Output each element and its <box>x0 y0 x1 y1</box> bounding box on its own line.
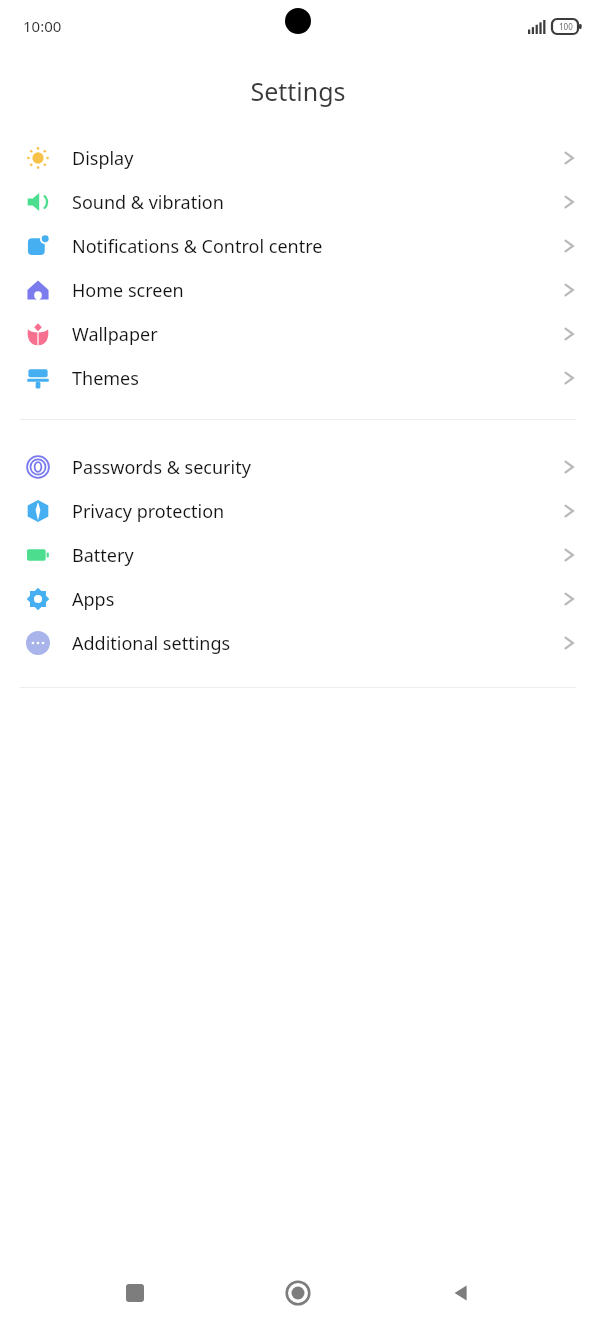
button[interactable]: Privacy protection <box>0 489 596 533</box>
staticText: Settings <box>0 74 596 108</box>
button[interactable]: Additional settings <box>0 621 596 665</box>
staticText: Privacy protection <box>72 499 562 524</box>
button[interactable]: Back <box>433 1265 489 1321</box>
staticText: Additional settings <box>72 631 562 656</box>
button[interactable]: Wallpaper <box>0 312 596 356</box>
staticText: 10:00 <box>23 16 62 36</box>
button[interactable]: Themes <box>0 356 596 400</box>
staticText: Sound & vibration <box>72 190 562 215</box>
button[interactable]: Display <box>0 136 596 180</box>
staticText: Apps <box>72 587 562 612</box>
button[interactable]: Home <box>270 1265 326 1321</box>
staticText: Wallpaper <box>72 322 562 347</box>
staticText: Display <box>72 146 562 171</box>
staticText: 100 <box>559 21 573 32</box>
staticText: Notifications & Control centre <box>72 234 562 259</box>
button[interactable]: Passwords & security <box>0 445 596 489</box>
button[interactable]: Notifications & Control centre <box>0 224 596 268</box>
staticText: Battery <box>72 543 562 568</box>
staticText: Themes <box>72 366 562 391</box>
button[interactable]: Sound & vibration <box>0 180 596 224</box>
button[interactable]: Recent apps <box>107 1265 163 1321</box>
staticText: Passwords & security <box>72 455 562 480</box>
button[interactable]: Apps <box>0 577 596 621</box>
button[interactable]: Home screen <box>0 268 596 312</box>
button[interactable]: Battery <box>0 533 596 577</box>
staticText: Home screen <box>72 278 562 303</box>
